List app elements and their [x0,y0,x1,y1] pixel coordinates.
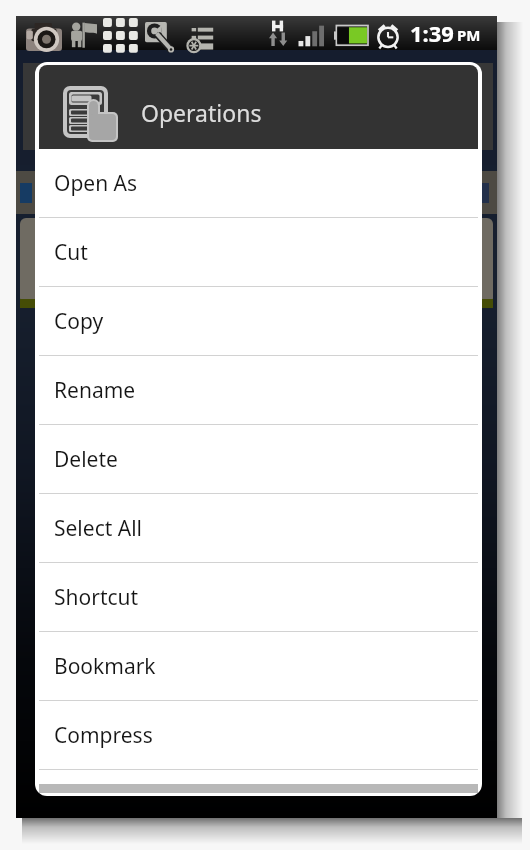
button[interactable]: Bookmark [39,632,478,700]
staticText: Delete [54,445,118,474]
staticText: Select All [54,514,143,543]
button[interactable]: Copy [39,287,478,355]
staticText: Rename [54,376,136,405]
button[interactable]: Select All [39,494,478,562]
staticText: Shortcut [54,583,139,612]
staticText: Copy [54,307,104,336]
staticText: Operations [141,97,262,128]
button[interactable]: Delete [39,425,478,493]
button[interactable]: System status [264,16,497,50]
staticText: Cut [54,238,88,267]
staticText: 1:39 [410,18,454,48]
button[interactable]: Cut [39,218,478,286]
staticText: Compress [54,721,153,750]
button[interactable]: Compress [39,701,478,769]
button[interactable]: Open As [39,149,478,217]
staticText: PM [457,25,481,45]
button[interactable]: Shortcut [39,563,478,631]
staticText: Bookmark [54,652,156,681]
button[interactable]: Notifications [24,16,224,50]
staticText: Open As [54,169,138,198]
button[interactable]: Rename [39,356,478,424]
